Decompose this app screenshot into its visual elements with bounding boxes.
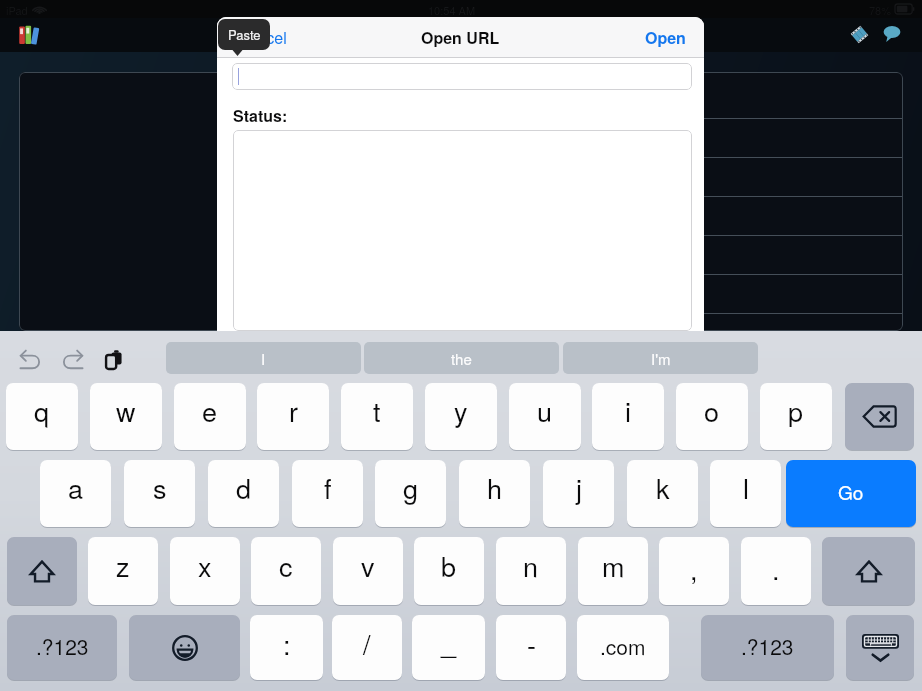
button[interactable]: Open: [645, 26, 686, 49]
button[interactable]: z: [88, 537, 158, 605]
button[interactable]: Library: [19, 25, 43, 44]
button[interactable]: -: [496, 615, 566, 680]
staticText: x: [198, 546, 212, 585]
staticText: c: [279, 546, 293, 585]
staticText: I: [261, 348, 266, 369]
staticText: Cancel: [237, 26, 287, 49]
button[interactable]: :: [250, 615, 323, 680]
button[interactable]: n: [496, 537, 566, 605]
staticText: p: [788, 391, 804, 430]
button[interactable]: j: [543, 460, 614, 527]
button[interactable]: w: [90, 383, 162, 450]
staticText: .com: [600, 631, 646, 661]
staticText: l: [743, 468, 749, 507]
staticText: 10:54 AM: [428, 2, 476, 18]
staticText: i: [625, 391, 631, 430]
staticText: v: [361, 546, 375, 585]
staticText: 78%: [869, 2, 892, 18]
button[interactable]: Go: [786, 460, 916, 527]
staticText: d: [236, 468, 252, 507]
staticText: Open URL: [421, 26, 500, 49]
button[interactable]: q: [6, 383, 78, 450]
staticText: .?123: [36, 631, 89, 661]
button[interactable]: Paste: [218, 19, 270, 50]
staticText: Go: [838, 478, 864, 505]
staticText: a: [68, 468, 84, 507]
button[interactable]: o: [676, 383, 748, 450]
staticText: .?123: [741, 631, 794, 661]
button[interactable]: Redo: [62, 350, 83, 369]
staticText: m: [602, 546, 625, 585]
staticText: s: [153, 468, 167, 507]
button[interactable]: .com: [577, 615, 669, 680]
button[interactable]: /: [332, 615, 402, 680]
button[interactable]: r: [257, 383, 329, 450]
staticText: -: [527, 624, 536, 663]
button[interactable]: _: [412, 615, 485, 680]
button[interactable]: i: [592, 383, 664, 450]
staticText: z: [116, 546, 130, 585]
button[interactable]: Notes: [880, 22, 904, 46]
button[interactable]: [232, 63, 692, 90]
staticText: :: [283, 624, 291, 663]
button[interactable]: ,: [659, 537, 729, 605]
staticText: g: [403, 468, 419, 507]
button[interactable]: .: [741, 537, 811, 605]
button[interactable]: .?123: [7, 615, 117, 680]
staticText: iPad: [6, 2, 28, 18]
button[interactable]: [19, 72, 299, 331]
button[interactable]: Cancel: [237, 17, 287, 57]
staticText: Paste: [228, 25, 261, 44]
button[interactable]: y: [425, 383, 497, 450]
button[interactable]: l: [710, 460, 781, 527]
button[interactable]: Emoji: [129, 615, 240, 680]
staticText: the: [451, 348, 472, 369]
staticText: n: [523, 546, 539, 585]
button[interactable]: m: [578, 537, 648, 605]
staticText: ,: [690, 549, 698, 588]
staticText: /: [363, 624, 371, 663]
button[interactable]: d: [208, 460, 279, 527]
button[interactable]: I'm: [563, 342, 758, 374]
button[interactable]: .?123: [701, 615, 834, 680]
button[interactable]: b: [414, 537, 484, 605]
button[interactable]: I: [166, 342, 361, 374]
staticText: o: [704, 391, 720, 430]
button[interactable]: Backspace: [845, 383, 914, 450]
staticText: q: [34, 391, 50, 430]
button[interactable]: e: [174, 383, 246, 450]
button[interactable]: Shift: [822, 537, 915, 605]
staticText: .: [772, 549, 780, 588]
staticText: u: [537, 391, 553, 430]
button[interactable]: a: [40, 460, 111, 527]
staticText: _: [441, 622, 457, 661]
staticText: t: [373, 391, 381, 430]
staticText: h: [487, 468, 503, 507]
button[interactable]: Shift: [7, 537, 77, 605]
staticText: e: [202, 391, 218, 430]
button[interactable]: c: [251, 537, 321, 605]
button[interactable]: g: [375, 460, 446, 527]
staticText: b: [441, 546, 457, 585]
button[interactable]: t: [341, 383, 413, 450]
button[interactable]: v: [333, 537, 403, 605]
button[interactable]: p: [760, 383, 832, 450]
button[interactable]: the: [364, 342, 559, 374]
button[interactable]: f: [292, 460, 363, 527]
button[interactable]: s: [124, 460, 195, 527]
button[interactable]: k: [627, 460, 698, 527]
staticText: Open: [645, 26, 686, 49]
button[interactable]: Undo: [20, 350, 41, 369]
button[interactable]: h: [459, 460, 530, 527]
button[interactable]: Paste: [105, 350, 123, 370]
staticText: k: [656, 468, 670, 507]
staticText: r: [289, 391, 298, 430]
staticText: Status:: [233, 104, 288, 127]
button[interactable]: x: [170, 537, 240, 605]
button[interactable]: u: [509, 383, 581, 450]
staticText: y: [454, 391, 468, 430]
button[interactable]: Hide keyboard: [846, 615, 914, 680]
staticText: w: [116, 391, 136, 430]
staticText: I'm: [651, 348, 671, 369]
button[interactable]: Bookmarks: [847, 22, 871, 46]
